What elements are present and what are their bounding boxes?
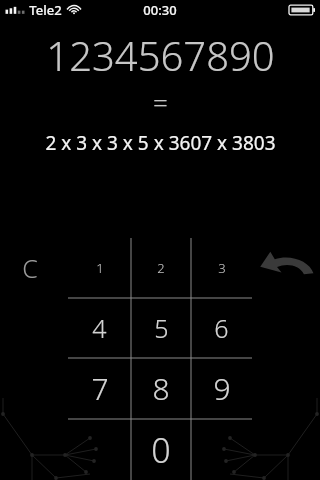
button[interactable]: 3 — [191, 238, 252, 298]
button[interactable]: C — [10, 248, 50, 288]
button[interactable]: 9 — [191, 358, 252, 419]
staticText: 2 x 3 x 3 x 5 x 3607 x 3803 — [45, 130, 276, 156]
button[interactable]: 8 — [131, 358, 191, 419]
button[interactable]: 5 — [131, 298, 191, 358]
button[interactable]: Backspace — [258, 246, 314, 290]
staticText: 8 — [152, 368, 170, 409]
staticText: 0 — [151, 427, 171, 473]
staticText: C — [22, 251, 38, 285]
button[interactable]: 7 — [68, 358, 131, 419]
staticText: = — [153, 84, 168, 110]
button[interactable]: 1 — [68, 238, 131, 298]
staticText: 3 — [218, 259, 226, 277]
button[interactable]: 4 — [68, 298, 131, 358]
staticText: 00:30 — [143, 1, 177, 19]
staticText: 7 — [91, 368, 109, 409]
button[interactable] — [191, 419, 252, 480]
staticText: Tele2 — [29, 1, 62, 19]
staticText: 1 — [96, 259, 104, 277]
staticText: 1234567890 — [46, 28, 275, 82]
staticText: 4 — [92, 311, 107, 345]
staticText: 5 — [154, 311, 169, 345]
button[interactable]: 0 — [131, 419, 191, 480]
button[interactable] — [68, 419, 131, 480]
staticText: 6 — [214, 311, 229, 345]
staticText: 9 — [213, 368, 231, 409]
button[interactable]: 6 — [191, 298, 252, 358]
button[interactable]: 2 — [131, 238, 191, 298]
staticText: 2 — [157, 259, 165, 277]
